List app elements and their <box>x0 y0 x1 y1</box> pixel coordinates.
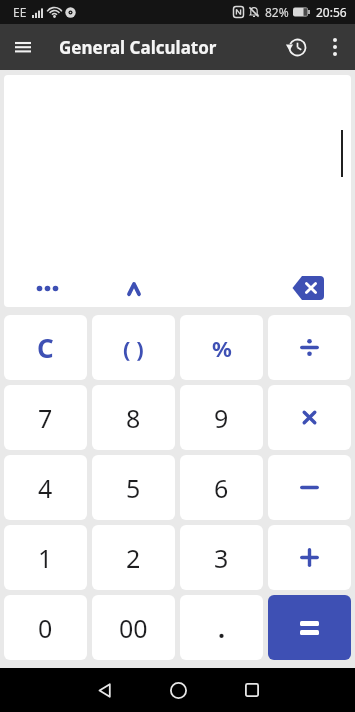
staticText: 9 <box>214 401 229 435</box>
button[interactable]: . <box>180 595 263 660</box>
staticText: . <box>218 611 226 645</box>
staticText: 5 <box>126 471 141 505</box>
staticText: ( ) <box>123 333 144 363</box>
staticText: 6 <box>214 471 229 505</box>
staticText: 4 <box>38 471 53 505</box>
button[interactable] <box>268 595 351 660</box>
staticText: 0 <box>38 611 53 645</box>
staticText: 8 <box>126 401 141 435</box>
button[interactable]: 8 <box>92 385 175 450</box>
button[interactable] <box>117 276 151 302</box>
button[interactable] <box>224 668 280 712</box>
staticText: EE <box>13 4 27 20</box>
button[interactable] <box>268 315 351 380</box>
button[interactable]: 00 <box>92 595 175 660</box>
button[interactable] <box>0 24 46 70</box>
button[interactable]: C <box>4 315 87 380</box>
staticText: % <box>212 333 232 363</box>
staticText: 3 <box>214 541 229 575</box>
staticText: 7 <box>38 401 53 435</box>
staticText: C <box>37 330 54 365</box>
button[interactable]: 2 <box>92 525 175 590</box>
button[interactable] <box>268 525 351 590</box>
button[interactable] <box>277 24 317 70</box>
staticText: 1 <box>38 541 53 575</box>
staticText: General Calculator <box>59 36 217 59</box>
button[interactable]: ( ) <box>92 315 175 380</box>
button[interactable] <box>150 668 206 712</box>
staticText: 2 <box>126 541 141 575</box>
button[interactable]: 6 <box>180 455 263 520</box>
button[interactable]: 3 <box>180 525 263 590</box>
button[interactable]: 7 <box>4 385 87 450</box>
staticText: 20:56 <box>316 4 347 20</box>
button[interactable] <box>268 385 351 450</box>
button[interactable] <box>288 269 328 307</box>
button[interactable] <box>268 455 351 520</box>
button[interactable]: 5 <box>92 455 175 520</box>
staticText: 82% <box>265 4 289 20</box>
staticText: 00 <box>119 611 148 645</box>
button[interactable] <box>76 668 132 712</box>
button[interactable]: 0 <box>4 595 87 660</box>
button[interactable]: 4 <box>4 455 87 520</box>
button[interactable]: 9 <box>180 385 263 450</box>
button[interactable]: 1 <box>4 525 87 590</box>
button[interactable] <box>30 275 64 301</box>
button[interactable] <box>317 24 353 70</box>
button[interactable]: % <box>180 315 263 380</box>
